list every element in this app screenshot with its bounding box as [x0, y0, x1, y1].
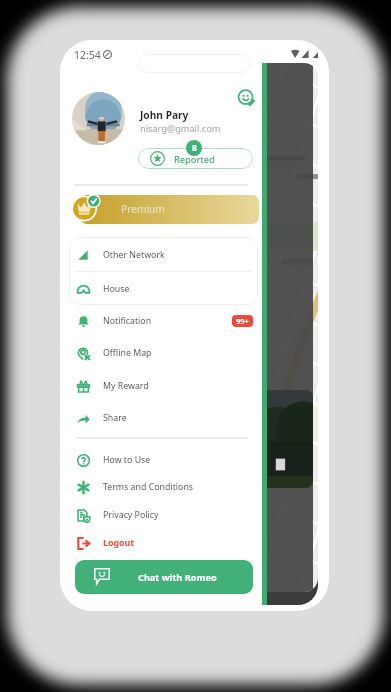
staticText: Logout [103, 537, 135, 549]
button[interactable]: Notification [69, 306, 259, 336]
button[interactable]: Terms and Conditions [69, 472, 259, 502]
staticText: House [103, 283, 130, 295]
staticText: Notification [103, 315, 152, 327]
staticText: Reported [174, 153, 215, 166]
staticText: Share [103, 412, 127, 424]
staticText: Privacy Policy [103, 509, 159, 521]
staticText: Offline Map [103, 347, 152, 359]
button[interactable]: Reported [138, 148, 253, 169]
staticText: 12:54 [74, 48, 101, 62]
button[interactable]: Premium [80, 195, 259, 224]
button[interactable]: Share [69, 403, 259, 433]
button[interactable]: Offline Map [69, 338, 259, 368]
staticText: My Reward [103, 380, 149, 392]
staticText: nisarg@gmail.com [140, 122, 221, 135]
staticText: Terms and Conditions [103, 481, 194, 493]
button[interactable]: House [69, 274, 259, 304]
button[interactable]: My Reward [69, 371, 259, 401]
button[interactable]: Edit profile [238, 89, 256, 107]
staticText: Premium [121, 202, 165, 216]
button[interactable]: Privacy Policy [69, 500, 259, 530]
staticText: Other Network [103, 249, 165, 261]
button[interactable]: Other Network [69, 240, 259, 270]
button[interactable]: Logout [69, 528, 259, 558]
staticText: 99+ [236, 316, 249, 326]
staticText: Chat with Romeo [138, 571, 217, 584]
staticText: John Pary [140, 108, 189, 122]
staticText: 8 [192, 142, 197, 154]
staticText: How to Use [103, 454, 151, 466]
button[interactable]: How to Use [69, 445, 259, 475]
button[interactable]: Chat with Romeo [75, 560, 253, 594]
